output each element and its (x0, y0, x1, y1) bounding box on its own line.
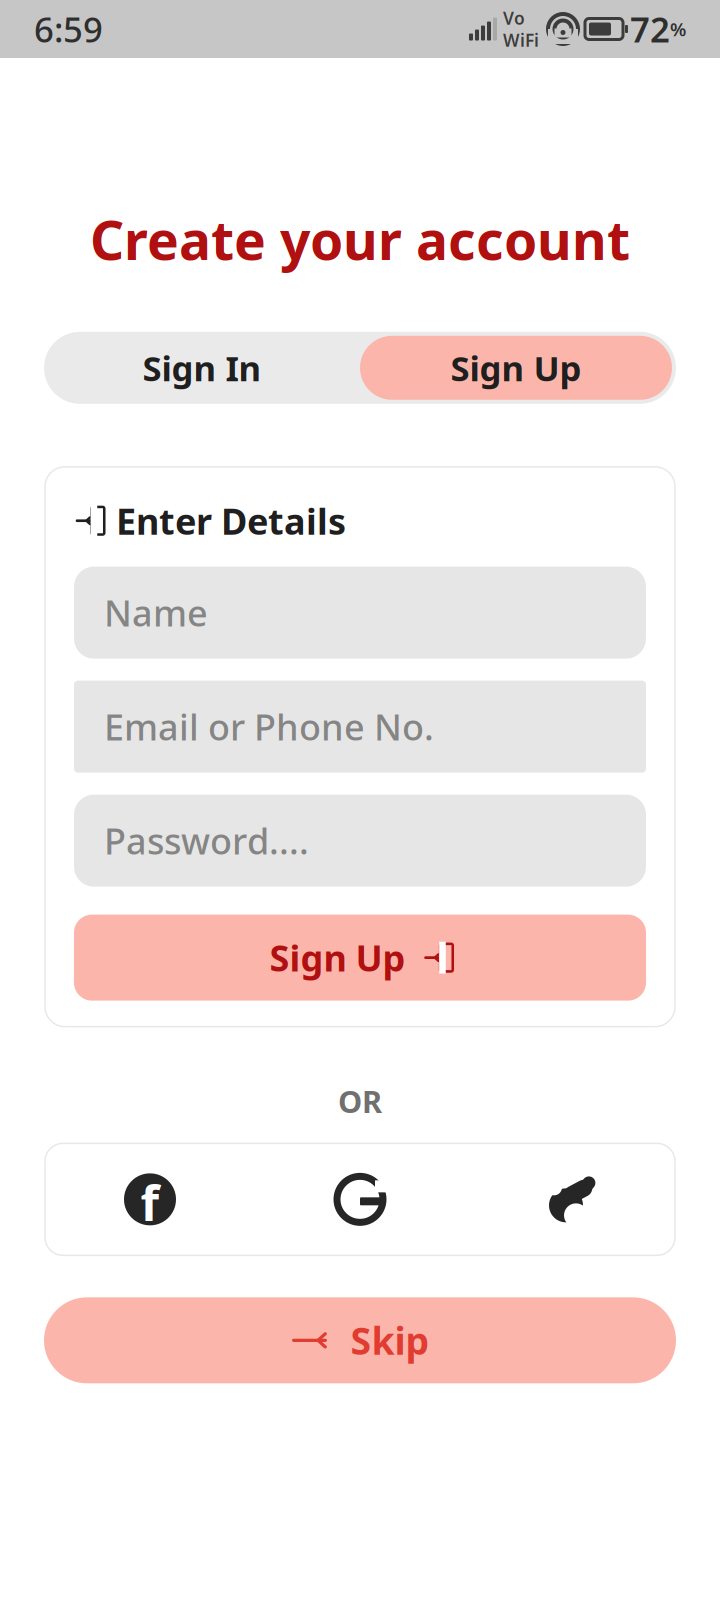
staticText: Password.... (104, 817, 309, 864)
button[interactable]: Sign up with Google (255, 1143, 465, 1255)
button[interactable]: Sign Up (74, 915, 646, 1001)
staticText: OR (338, 1081, 382, 1121)
button[interactable]: Skip (44, 1297, 676, 1383)
staticText: Sign In (142, 345, 261, 391)
staticText: 6:59 (34, 6, 103, 52)
staticText: % (670, 17, 686, 41)
button[interactable]: Sign In (44, 332, 360, 404)
staticText: Skip (350, 1316, 429, 1365)
staticText: Sign Up (269, 934, 405, 981)
staticText: Email or Phone No. (104, 703, 434, 750)
staticText: Sign Up (450, 345, 581, 391)
staticText: Name (104, 589, 208, 636)
staticText: Enter Details (116, 497, 346, 545)
staticText: Create your account (90, 204, 630, 275)
button[interactable]: Sign Up (360, 336, 676, 400)
staticText: f (140, 1170, 159, 1234)
button[interactable]: Sign up with Twitter (465, 1143, 675, 1255)
staticText: Vo (503, 6, 525, 29)
button[interactable]: Sign up with Facebook (45, 1143, 255, 1255)
staticText: 72 (630, 6, 670, 52)
staticText: WiFi (503, 28, 539, 51)
